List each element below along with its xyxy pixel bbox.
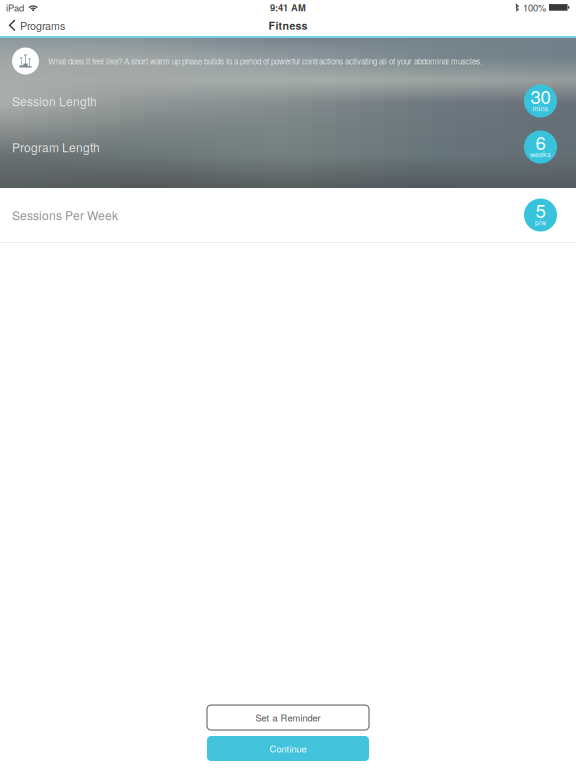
button[interactable]: Programs (0, 15, 71, 36)
staticText: 100% (523, 1, 546, 14)
staticText: Fitness (268, 18, 307, 33)
staticText: Sessions Per Week (12, 206, 118, 224)
staticText: weeks (530, 149, 551, 159)
staticText: Session Length (12, 92, 97, 110)
staticText: What does it feel like? A short warm up … (48, 55, 482, 67)
staticText: 30 (530, 83, 550, 109)
staticText: Programs (20, 18, 65, 33)
staticText: Continue (269, 742, 306, 755)
staticText: Program Length (12, 138, 100, 156)
staticText: mins (532, 103, 548, 113)
staticText: Set a Reminder (255, 711, 320, 724)
staticText: p/w (535, 217, 546, 227)
staticText: 6 (535, 129, 545, 155)
staticText: 9:41 AM (270, 1, 306, 14)
button[interactable]: Program Length (0, 124, 576, 170)
button[interactable]: Session Length (0, 78, 576, 124)
button[interactable]: Continue (207, 736, 369, 761)
button[interactable]: Sessions Per Week (0, 188, 576, 242)
staticText: 5 (535, 197, 545, 223)
button[interactable]: Set a Reminder (207, 705, 369, 730)
staticText: iPad (6, 1, 24, 14)
